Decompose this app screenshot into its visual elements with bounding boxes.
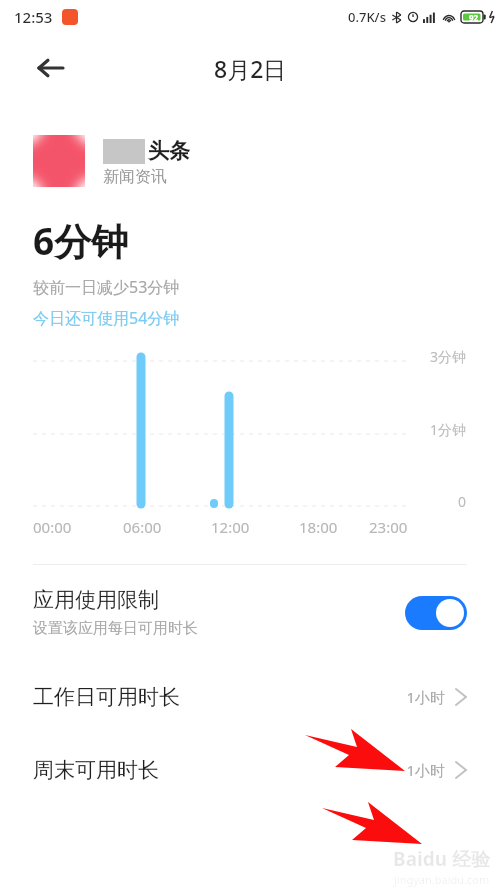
staticText: 工作日可用时长: [33, 684, 406, 710]
staticText: 较前一日减少53分钟: [33, 276, 180, 298]
staticText: 12:00: [211, 517, 250, 537]
staticText: 1小时: [406, 760, 445, 780]
staticText: 00:00: [33, 517, 72, 537]
staticText: 周末可用时长: [33, 757, 406, 783]
staticText: jingyan.baidu.com: [394, 872, 490, 887]
staticText: 12:53: [14, 7, 53, 27]
staticText: 设置该应用每日可用时长: [33, 619, 198, 638]
button[interactable]: 应用使用限制开关: [405, 596, 467, 630]
button[interactable]: Back: [26, 44, 74, 92]
staticText: 23:00: [369, 517, 408, 537]
staticText: 1小时: [406, 687, 445, 707]
staticText: 06:00: [123, 517, 162, 537]
staticText: 92: [469, 12, 479, 23]
staticText: Baidu 经验: [393, 846, 490, 872]
staticText: 0.7K/s: [348, 8, 386, 26]
button[interactable]: 工作日可用时长: [0, 660, 500, 733]
staticText: 8月2日: [214, 53, 287, 84]
staticText: 1分钟: [430, 420, 467, 439]
button[interactable]: 应用使用限制: [0, 565, 500, 660]
staticText: 6分钟: [33, 215, 129, 266]
button[interactable]: 周末可用时长: [0, 733, 500, 806]
staticText: 头条: [148, 138, 190, 164]
staticText: 0: [458, 492, 467, 511]
staticText: 3分钟: [430, 347, 467, 366]
staticText: 应用使用限制: [33, 587, 159, 613]
button[interactable]: 今日还可使用54分钟: [33, 307, 180, 329]
staticText: 18:00: [299, 517, 338, 537]
staticText: 新闻资讯: [103, 167, 167, 187]
